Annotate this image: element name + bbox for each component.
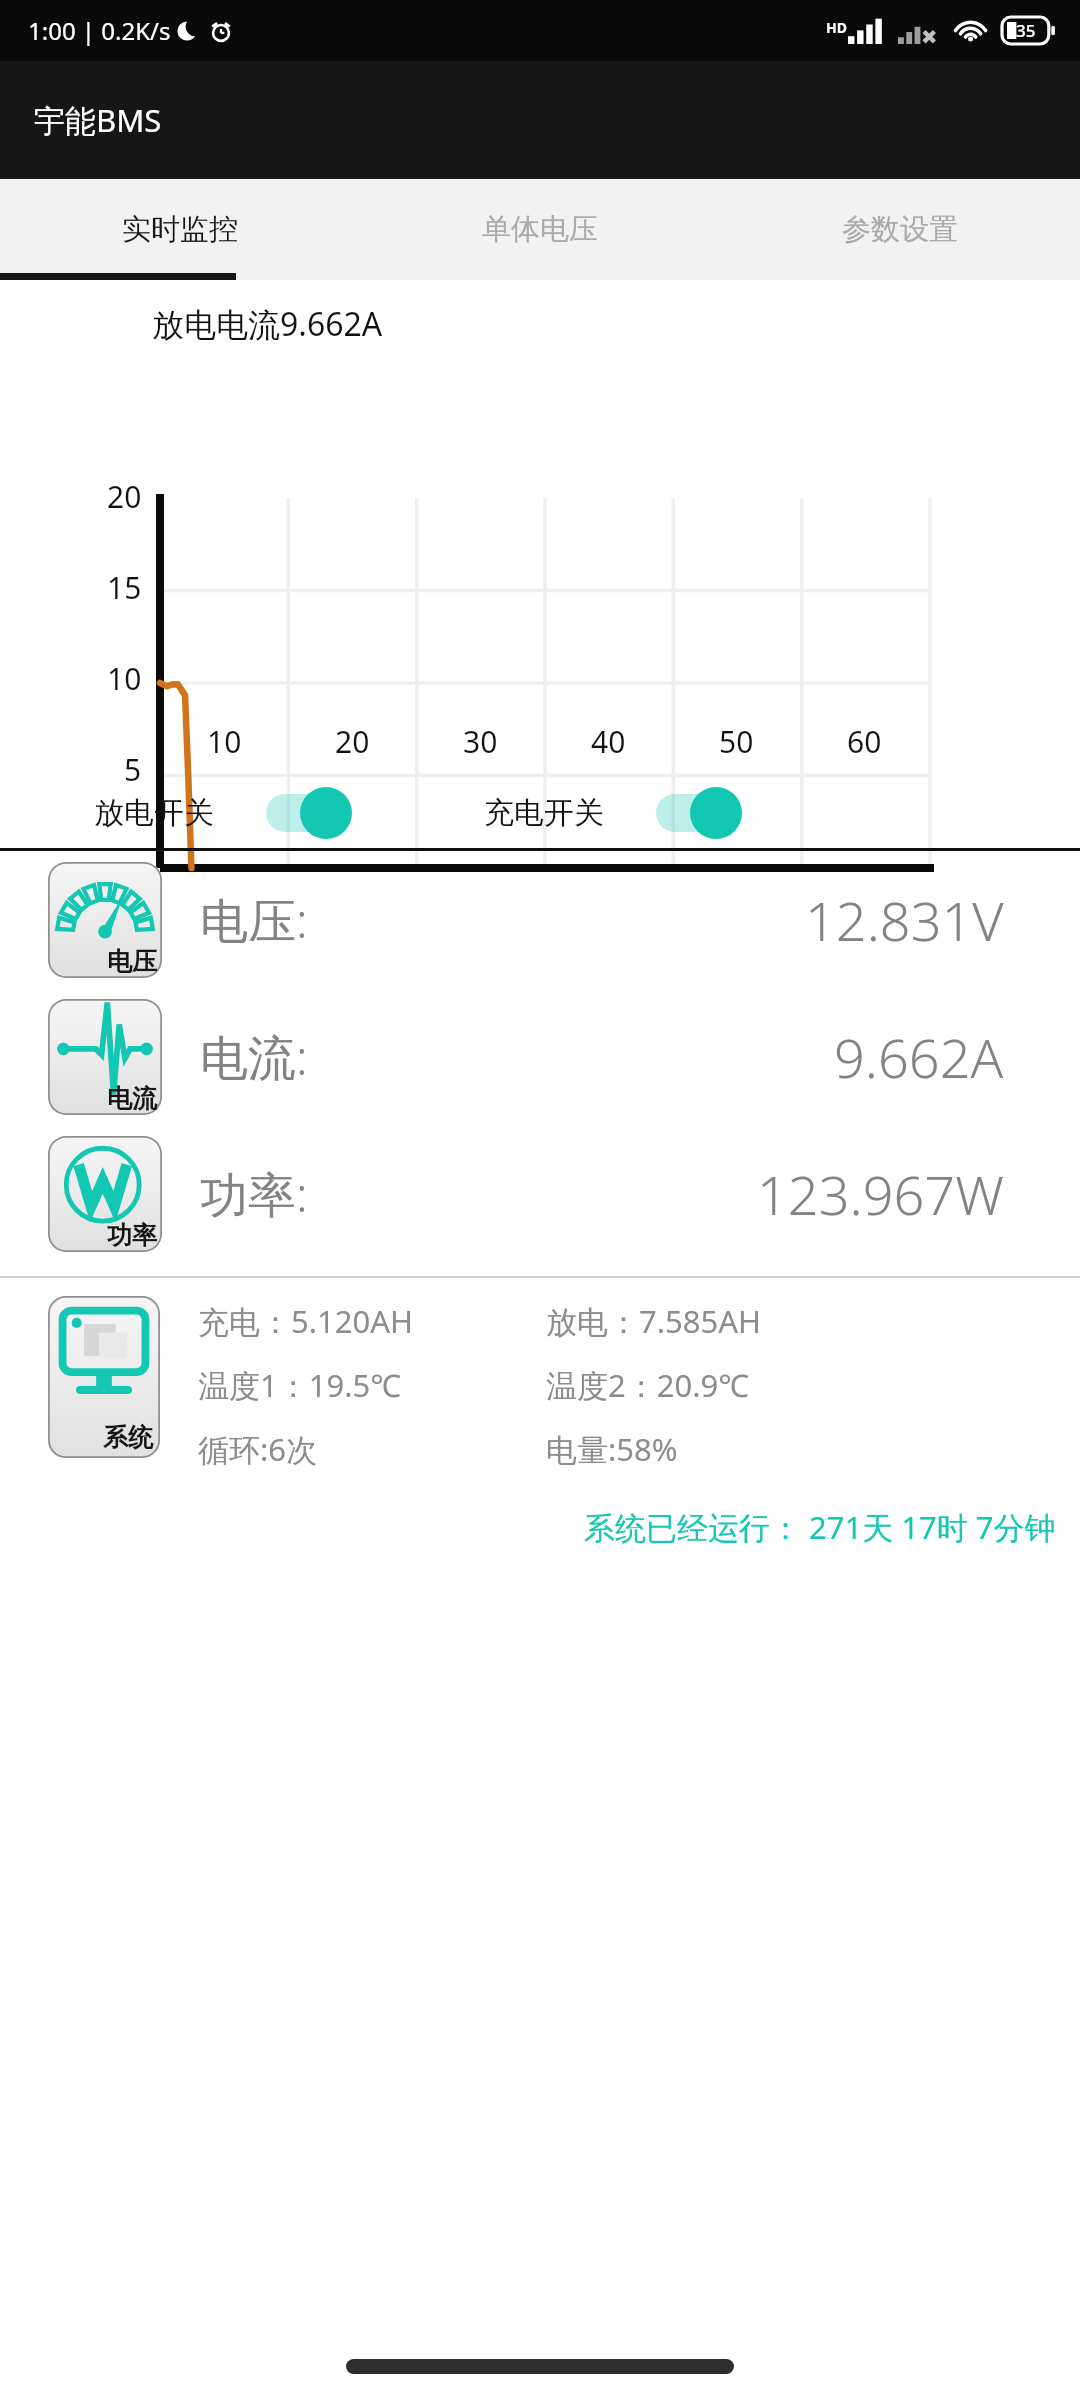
staticText: 电压: (200, 887, 308, 953)
button[interactable]: 电流 (0, 988, 1080, 1125)
staticText: 9.662A (834, 1020, 1004, 1094)
staticText: 12.831V (805, 883, 1004, 957)
staticText: 温度1：19.5℃ (198, 1364, 402, 1406)
staticText: 实时监控 (122, 211, 238, 248)
staticText: 35 (1016, 19, 1036, 42)
staticText: 功率: (200, 1161, 308, 1227)
button[interactable]: 电压 (0, 851, 1080, 988)
staticText: 放电电流9.662A (152, 302, 383, 346)
staticText: 参数设置 (842, 211, 958, 248)
button[interactable] (262, 786, 354, 840)
staticText: 20 (335, 721, 370, 762)
staticText: HD (826, 18, 847, 37)
staticText: 30 (463, 721, 498, 762)
staticText: 10 (207, 721, 242, 762)
staticText: 20 (107, 476, 142, 517)
staticText: 充电：5.120AH (198, 1300, 414, 1342)
staticText: 放电：7.585AH (546, 1300, 762, 1342)
staticText: 电流: (200, 1024, 308, 1090)
staticText: 50 (719, 721, 754, 762)
staticText: 充电开关 (484, 794, 604, 832)
staticText: 电压 (107, 946, 157, 977)
button[interactable] (652, 786, 744, 840)
staticText: 系统 (103, 1422, 153, 1453)
other: Do not disturb (175, 19, 199, 43)
other: Alarm (209, 19, 233, 43)
staticText: 电流 (107, 1083, 157, 1114)
staticText: 功率 (107, 1220, 157, 1251)
staticText: 电量:58% (546, 1428, 678, 1470)
staticText: 5 (124, 749, 142, 790)
staticText: 放电开关 (94, 794, 214, 832)
staticText: 循环:6次 (198, 1428, 318, 1470)
staticText: 123.967W (757, 1157, 1004, 1231)
staticText: 1:00 | 0.2K/s (28, 14, 171, 47)
button[interactable]: 功率 (0, 1125, 1080, 1262)
other: Wi-Fi (954, 18, 990, 44)
staticText: 10 (107, 658, 142, 699)
button[interactable]: 参数设置 (720, 179, 1080, 280)
staticText: 15 (107, 567, 142, 608)
button[interactable]: 单体电压 (360, 179, 720, 280)
other: Battery 35 percent (1002, 17, 1054, 44)
staticText: 60 (847, 721, 882, 762)
staticText: 系统已经运行： 271天 17时 7分钟 (584, 1506, 1056, 1548)
staticText: 温度2：20.9℃ (546, 1364, 750, 1406)
staticText: 单体电压 (482, 211, 598, 248)
staticText: 40 (591, 721, 626, 762)
button[interactable]: 实时监控 (0, 179, 360, 280)
staticText: 宇能BMS (34, 99, 162, 141)
